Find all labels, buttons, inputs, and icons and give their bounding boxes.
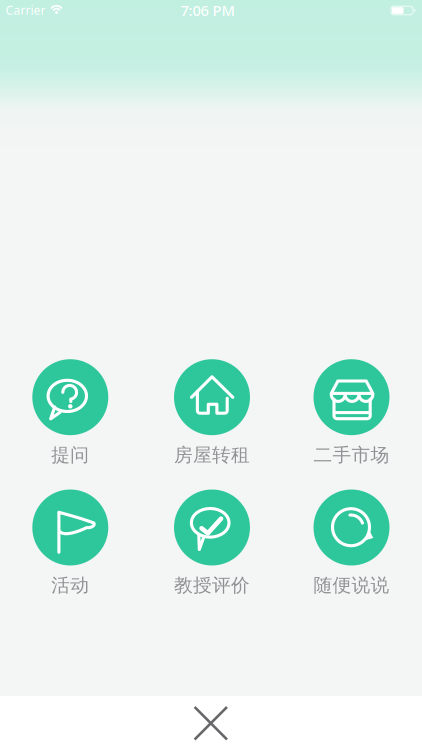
button[interactable]: 二手市场 — [306, 359, 396, 465]
button[interactable]: 教授评价 — [167, 489, 257, 595]
staticText: 房屋转租 — [174, 443, 250, 466]
button[interactable]: 活动 — [25, 489, 115, 595]
staticText: 随便说说 — [313, 574, 389, 597]
button[interactable]: 提问 — [25, 359, 115, 465]
staticText: Carrier — [5, 2, 45, 18]
staticText: 7:06 PM — [180, 1, 234, 20]
staticText: 活动 — [51, 574, 89, 597]
staticText: 提问 — [51, 443, 89, 466]
staticText: 二手市场 — [313, 443, 389, 466]
button[interactable]: 房屋转租 — [167, 359, 257, 465]
button[interactable]: 随便说说 — [306, 489, 396, 595]
staticText: 教授评价 — [174, 574, 250, 597]
button[interactable]: Close — [0, 696, 422, 750]
